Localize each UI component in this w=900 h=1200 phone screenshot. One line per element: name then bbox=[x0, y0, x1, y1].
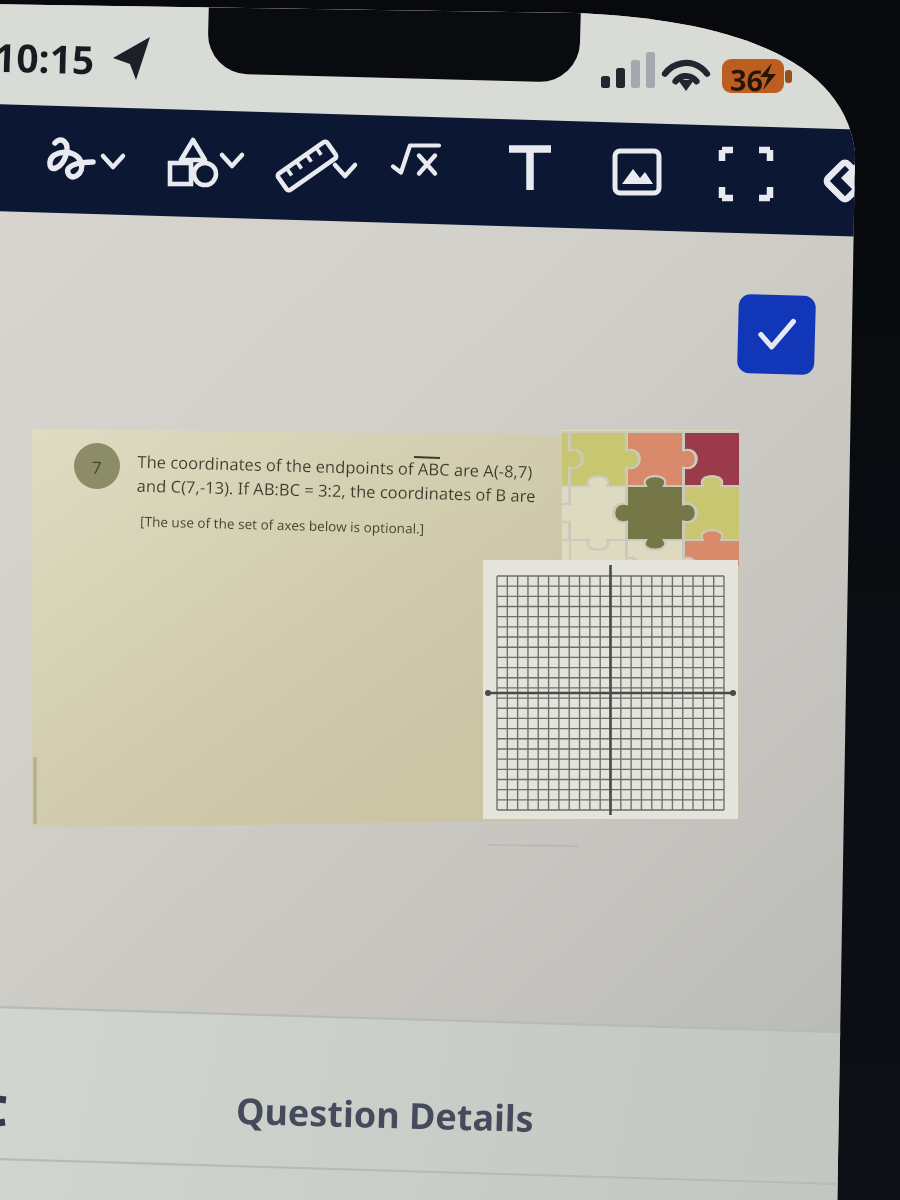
staticText: [The use of the set of axes below is opt… bbox=[140, 512, 425, 538]
staticText: 36 bbox=[729, 60, 764, 99]
button[interactable]: Ruler tool bbox=[268, 126, 368, 214]
button[interactable]: Insert image bbox=[600, 134, 676, 222]
button[interactable]: Text tool bbox=[494, 132, 566, 220]
button[interactable]: Confirm bbox=[738, 295, 816, 375]
button[interactable]: Crop bbox=[708, 136, 786, 224]
button[interactable]: Math equation bbox=[384, 130, 452, 218]
staticText: 10:15 bbox=[0, 30, 96, 85]
staticText: The coordinates of the endpoints of ABC … bbox=[136, 450, 537, 507]
button[interactable] bbox=[32, 429, 740, 825]
button[interactable]: Shapes tool bbox=[158, 124, 256, 210]
button[interactable]: Draw tool bbox=[34, 122, 136, 208]
staticText: Question Details bbox=[235, 1086, 535, 1143]
staticText: 7 bbox=[92, 456, 102, 479]
button[interactable] bbox=[0, 1030, 840, 1170]
button[interactable]: Eraser bbox=[812, 140, 892, 228]
